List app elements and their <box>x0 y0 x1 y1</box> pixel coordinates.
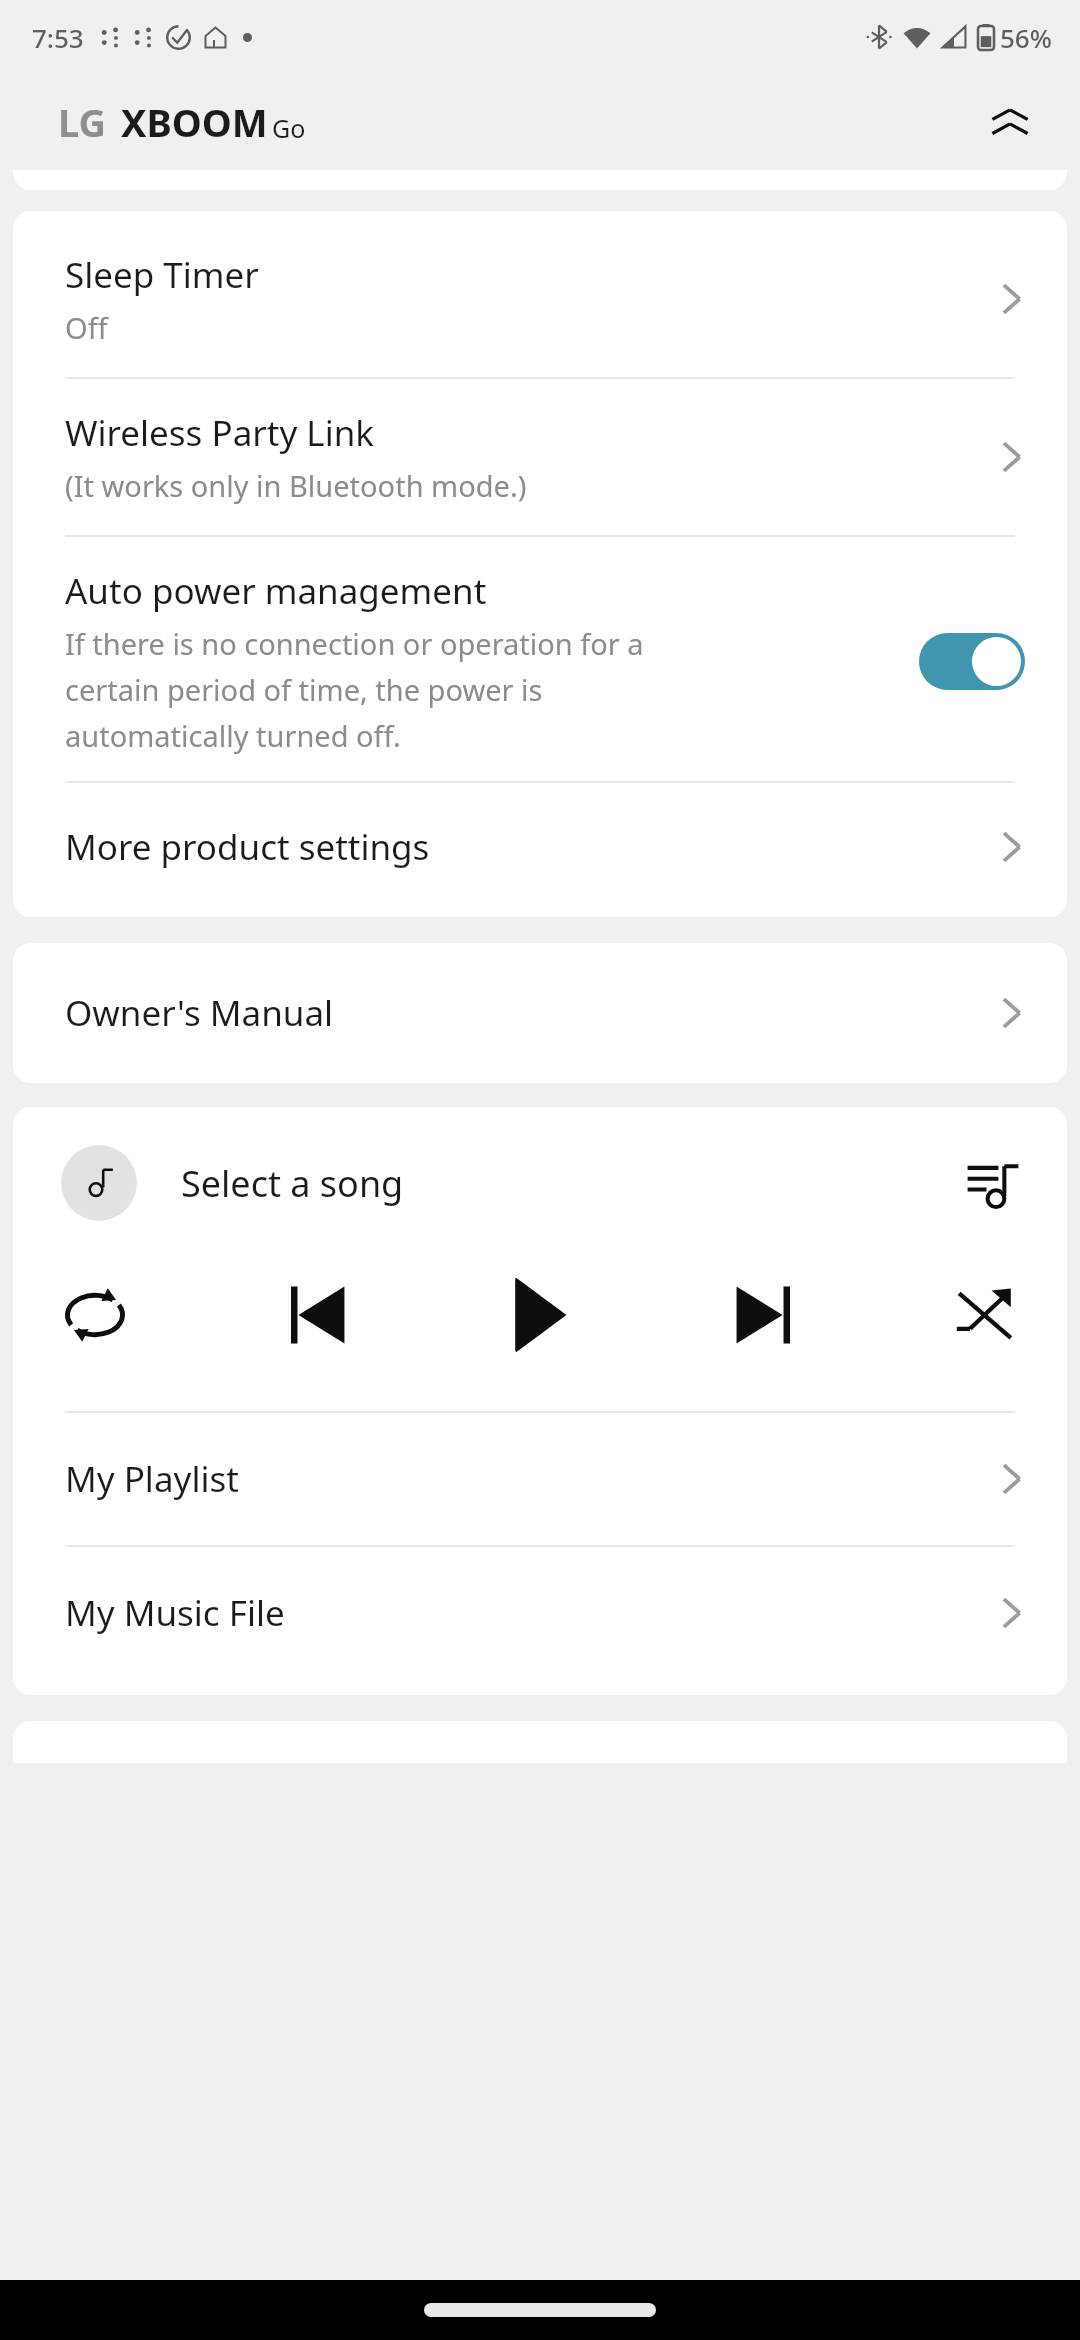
button[interactable]: Shuffle <box>941 1271 1029 1359</box>
staticText: Auto power management <box>65 567 487 615</box>
button[interactable]: Next track <box>719 1271 807 1359</box>
button[interactable]: Repeat <box>51 1271 139 1359</box>
button[interactable]: My Music File <box>13 1547 1067 1695</box>
button[interactable]: More product settings <box>13 783 1067 917</box>
staticText: (It works only in Bluetooth mode.) <box>65 466 527 505</box>
button[interactable]: Owner's Manual <box>13 943 1067 1083</box>
staticText: Off <box>65 308 108 347</box>
staticText: If there is no connection or operation f… <box>65 624 644 663</box>
button[interactable]: Playlist queue <box>961 1151 1025 1215</box>
button[interactable]: Auto power management <box>919 633 1025 690</box>
staticText: 56% <box>1000 20 1052 55</box>
staticText: certain period of time, the power is <box>65 670 543 709</box>
button[interactable]: Auto power management <box>13 537 1067 781</box>
staticText: Owner's Manual <box>65 989 334 1037</box>
button[interactable]: Collapse <box>978 90 1042 154</box>
button[interactable]: My Playlist <box>13 1413 1067 1545</box>
staticText: My Music File <box>65 1589 285 1637</box>
staticText: automatically turned off. <box>65 716 401 755</box>
button[interactable]: Previous track <box>274 1271 362 1359</box>
staticText: Go <box>272 111 306 145</box>
staticText: More product settings <box>65 823 430 871</box>
staticText: Wireless Party Link <box>65 409 375 457</box>
staticText: 7:53 <box>32 20 84 55</box>
button[interactable]: Wireless Party Link <box>13 379 1067 535</box>
staticText: Select a song <box>181 1159 961 1208</box>
button[interactable]: Sleep Timer <box>13 211 1067 377</box>
staticText: My Playlist <box>65 1455 239 1503</box>
staticText: XBOOM <box>121 96 268 148</box>
staticText: LG <box>58 96 106 148</box>
button[interactable]: Play <box>496 1271 584 1359</box>
staticText: Sleep Timer <box>65 251 259 299</box>
